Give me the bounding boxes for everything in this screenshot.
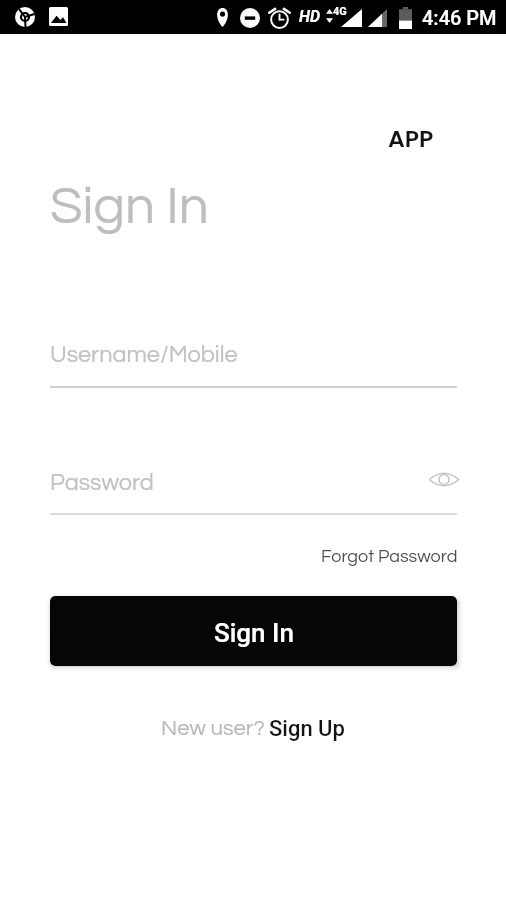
button[interactable]: Sign In [50,596,457,666]
button[interactable]: Show password [426,461,462,497]
button[interactable]: Forgot Password [309,537,470,576]
button[interactable]: Password [50,461,457,515]
staticText: Sign In [214,618,294,648]
staticText: New user? [161,717,265,740]
staticText: 4:46 PM [422,6,497,29]
staticText: Forgot Password [321,547,458,566]
staticText: Password [50,471,154,495]
button[interactable]: Username/Mobile [50,333,457,388]
staticText: 4G [333,5,347,18]
staticText: Sign In [50,180,209,235]
button[interactable]: Sign Up [263,707,351,751]
staticText: Sign Up [269,716,345,742]
staticText: HD [299,7,321,26]
staticText: Username/Mobile [50,343,238,367]
staticText: APP [388,122,434,155]
